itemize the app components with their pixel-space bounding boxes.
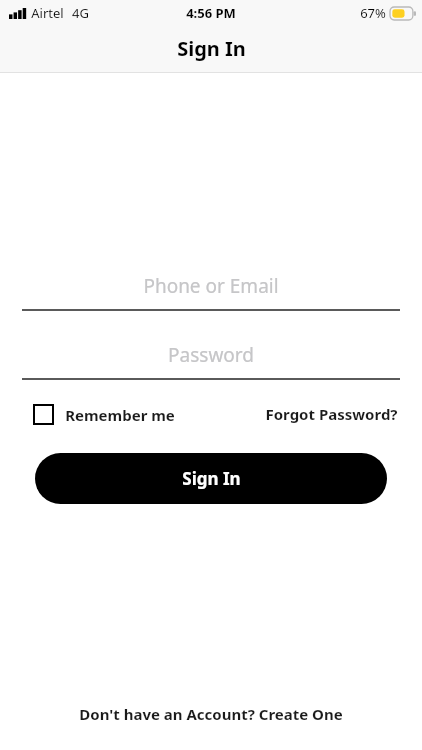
button[interactable]: Phone or Email: [0, 269, 422, 311]
staticText: Airtel: [31, 4, 64, 22]
button[interactable]: Forgot Password?: [263, 401, 400, 427]
button[interactable]: Remember me: [32, 402, 176, 427]
staticText: Password: [168, 342, 254, 368]
staticText: Sign In: [182, 467, 241, 490]
staticText: 4:56 PM: [186, 4, 236, 22]
staticText: 4G: [72, 4, 89, 22]
staticText: 67%: [360, 4, 386, 22]
button[interactable]: Sign In: [35, 453, 387, 504]
staticText: Remember me: [65, 405, 175, 425]
button[interactable]: Password: [0, 338, 422, 380]
staticText: Sign In: [177, 35, 246, 62]
button[interactable]: Don't have an Account? Create One: [71, 702, 351, 726]
staticText: Phone or Email: [143, 273, 279, 299]
